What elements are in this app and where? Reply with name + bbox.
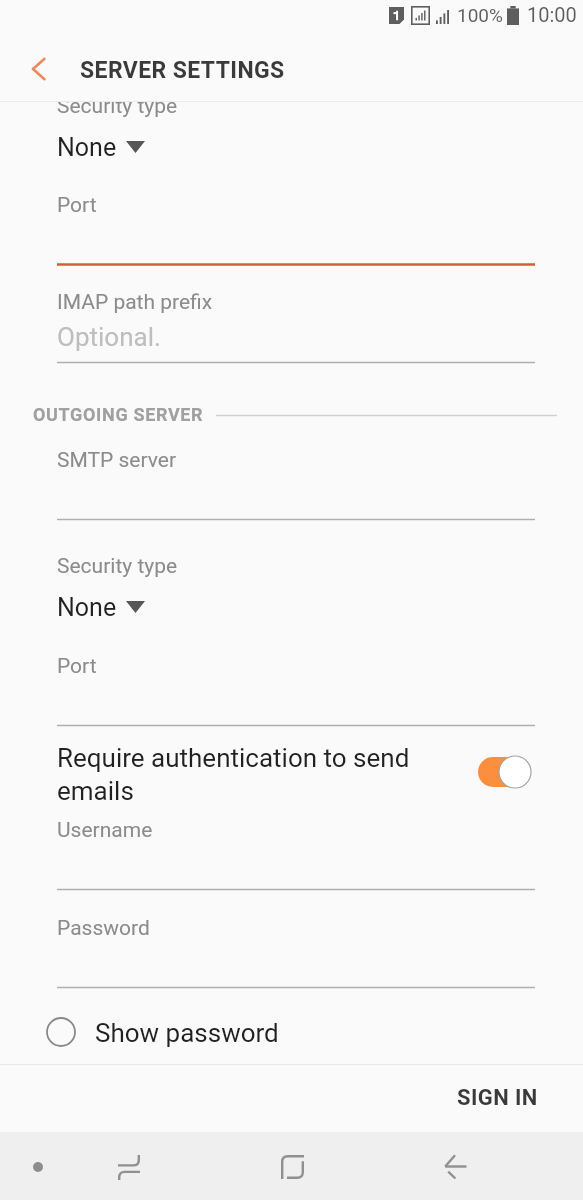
staticText: Optional.	[57, 322, 161, 352]
staticText: None	[57, 133, 117, 159]
staticText: OUTGOING SERVER	[33, 404, 204, 425]
button[interactable]: Show password	[0, 1017, 583, 1047]
button[interactable]: None	[57, 133, 117, 159]
staticText: Port	[57, 654, 97, 679]
staticText: SMTP server	[57, 448, 177, 473]
staticText: 100%	[457, 4, 503, 26]
staticText: SIGN IN	[457, 1085, 538, 1111]
staticText: Security type	[57, 101, 178, 119]
staticText: None	[57, 593, 117, 619]
button[interactable]: Show menu	[4, 1132, 72, 1200]
staticText: IMAP path prefix	[57, 290, 213, 315]
button[interactable]: Recent apps	[47, 1132, 211, 1200]
button[interactable]: Back	[373, 1132, 537, 1200]
staticText: Password	[57, 916, 150, 941]
staticText: Port	[57, 193, 97, 218]
staticText: Require authentication to send emails	[57, 743, 410, 805]
staticText: Username	[57, 818, 153, 843]
button[interactable]: Require authentication to send emails	[0, 743, 583, 805]
button[interactable]: SIGN IN	[433, 1073, 562, 1125]
button[interactable]: Home	[210, 1132, 374, 1200]
staticText: SERVER SETTINGS	[80, 57, 285, 84]
staticText: Security type	[57, 554, 178, 579]
staticText: 10:00	[527, 3, 577, 26]
staticText: Show password	[95, 1018, 279, 1048]
button[interactable]: None	[57, 593, 117, 619]
button[interactable]: Navigate up	[0, 42, 76, 96]
